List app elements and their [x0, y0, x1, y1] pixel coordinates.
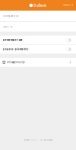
staticText: Privacy Policy [7, 61, 24, 64]
staticText: CONTACT US [63, 4, 73, 6]
button[interactable]: Enable Biometric [0, 45, 76, 54]
button[interactable]: Remember Me [0, 36, 76, 44]
staticText: Enable Biometric [3, 48, 29, 51]
button[interactable]: Privacy Policy [0, 58, 76, 67]
staticText: GoBank [34, 3, 47, 7]
button[interactable]: CONTACT US [63, 4, 76, 6]
staticText: User ID [3, 25, 13, 28]
staticText: version 1.0.0 • © 2024 Bank [23, 139, 52, 141]
staticText: Remember Me [3, 38, 23, 42]
staticText: Company ID [3, 14, 19, 17]
